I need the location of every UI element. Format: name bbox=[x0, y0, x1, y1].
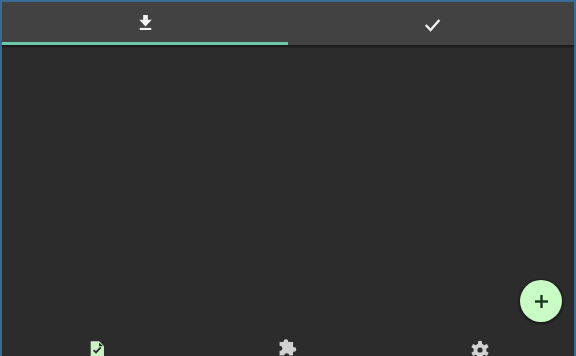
button[interactable]: Settings bbox=[383, 332, 574, 356]
button[interactable]: Files bbox=[2, 332, 192, 356]
button[interactable]: Add torrent bbox=[516, 276, 566, 326]
button[interactable]: Completed bbox=[288, 2, 574, 45]
button[interactable]: Downloading bbox=[2, 2, 288, 45]
button[interactable]: Extensions bbox=[192, 332, 383, 356]
